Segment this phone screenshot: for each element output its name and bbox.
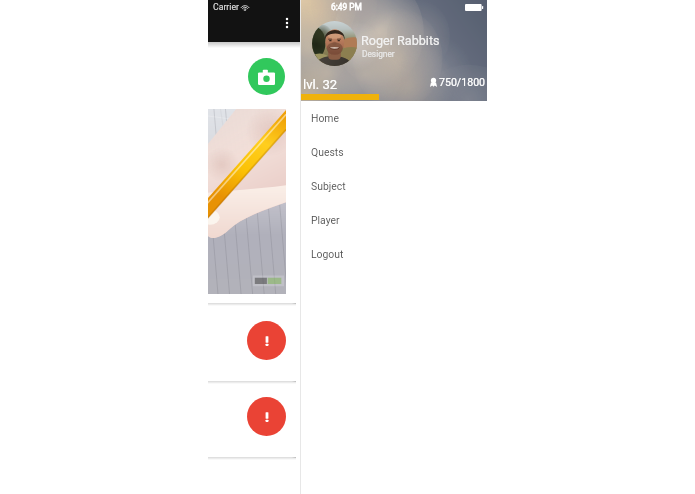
staticText: lvl. 32 — [303, 77, 338, 92]
staticText: Carrier — [213, 2, 239, 12]
staticText: 750/1800 — [439, 76, 486, 88]
staticText: 6:49 PM — [331, 2, 362, 12]
button[interactable]: Subject — [301, 169, 487, 203]
staticText: Quests — [311, 146, 344, 158]
staticText: Logout — [311, 248, 344, 260]
staticText: Roger Rabbits — [361, 33, 440, 48]
button[interactable]: Logout — [301, 237, 487, 271]
staticText: Subject — [311, 180, 346, 192]
button[interactable]: More options — [281, 18, 293, 30]
button[interactable]: Player — [301, 203, 487, 237]
button[interactable]: Quests — [301, 135, 487, 169]
staticText: Player — [311, 214, 340, 226]
staticText: Home — [311, 112, 339, 124]
button[interactable]: Alert — [247, 321, 286, 360]
button[interactable]: Alert — [247, 397, 286, 436]
button[interactable]: Take photo — [248, 58, 285, 95]
staticText: Designer — [362, 49, 395, 59]
button[interactable]: Alert — [208, 386, 296, 457]
button[interactable]: Home — [301, 101, 487, 135]
button[interactable]: Alert — [208, 310, 296, 381]
button[interactable] — [208, 109, 296, 303]
